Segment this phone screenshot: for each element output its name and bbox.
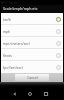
button[interactable]: Knots: [1, 49, 63, 61]
staticText: mph: [3, 29, 56, 33]
button[interactable]: Recent apps: [39, 86, 53, 100]
staticText: fps (feet/sec): [3, 65, 56, 69]
button[interactable]: Back: [8, 86, 22, 100]
button[interactable]: fps (feet/sec): [1, 61, 63, 73]
staticText: km/h: [3, 17, 56, 21]
button[interactable]: mph: [1, 25, 63, 37]
staticText: Knots: [3, 53, 56, 57]
staticText: Scale kmph/mph etc: [3, 6, 38, 11]
button[interactable]: km/h: [1, 13, 63, 25]
staticText: mps (meters/sec): [3, 41, 56, 45]
staticText: Cancel: [27, 75, 38, 80]
button[interactable]: Home: [23, 86, 37, 100]
button[interactable]: Cancel: [15, 74, 49, 81]
button[interactable]: mps (meters/sec): [1, 37, 63, 49]
staticText: GPS Sat fix: [1, 1, 18, 5]
